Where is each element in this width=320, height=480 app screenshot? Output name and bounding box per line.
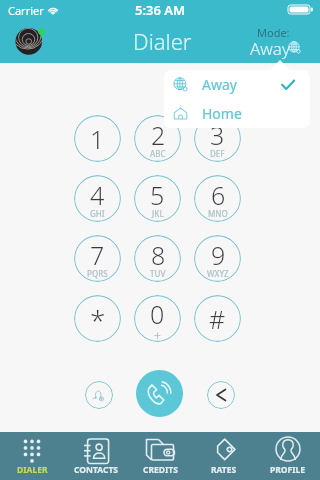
staticText: JKL bbox=[152, 208, 164, 219]
staticText: WXYZ bbox=[207, 268, 229, 279]
staticText: 0 bbox=[150, 297, 165, 331]
button[interactable]: 6 bbox=[194, 175, 241, 222]
staticText: PQRS bbox=[87, 268, 108, 279]
button[interactable]: 1 bbox=[74, 115, 121, 162]
button[interactable]: Away bbox=[164, 70, 310, 99]
button[interactable]: Home bbox=[164, 99, 310, 128]
button[interactable]: CREDITS bbox=[128, 432, 192, 480]
button[interactable]: 4 bbox=[74, 175, 121, 222]
staticText: 9 bbox=[211, 238, 226, 272]
button[interactable]: RATES bbox=[192, 432, 256, 480]
staticText: 8 bbox=[151, 238, 166, 272]
staticText: 6 bbox=[211, 178, 226, 212]
staticText: CREDITS bbox=[143, 464, 178, 476]
staticText: MNO bbox=[208, 208, 228, 219]
staticText: DIALER bbox=[17, 464, 48, 476]
staticText: 5:36 AM bbox=[135, 1, 186, 19]
button[interactable]: 0 bbox=[134, 295, 181, 342]
staticText: 2 bbox=[151, 118, 166, 152]
staticText: TUV bbox=[150, 268, 166, 279]
button[interactable]: CONTACTS bbox=[64, 432, 128, 480]
staticText: Away bbox=[250, 37, 290, 60]
button[interactable]: Mode: bbox=[248, 24, 312, 60]
staticText: Mode: bbox=[257, 25, 290, 40]
button[interactable]: 8 bbox=[134, 235, 181, 282]
button[interactable]: # bbox=[194, 295, 241, 342]
staticText: * bbox=[90, 301, 106, 339]
button[interactable]: * bbox=[74, 295, 121, 342]
staticText: 5 bbox=[150, 178, 165, 212]
staticText: GHI bbox=[90, 208, 105, 219]
staticText: Away bbox=[202, 75, 237, 94]
staticText: + bbox=[154, 327, 161, 340]
button[interactable]: PROFILE bbox=[256, 432, 320, 480]
staticText: # bbox=[209, 302, 226, 336]
button[interactable]: DIALER bbox=[0, 432, 64, 480]
staticText: RATES bbox=[211, 464, 237, 476]
staticText: Home bbox=[202, 104, 242, 123]
staticText: 1 bbox=[90, 122, 105, 156]
button[interactable]: 3 bbox=[194, 115, 241, 162]
button[interactable]: 2 bbox=[134, 115, 181, 162]
staticText: PROFILE bbox=[270, 464, 306, 476]
staticText: Carrier bbox=[8, 3, 44, 18]
staticText: 3 bbox=[210, 118, 225, 152]
button[interactable]: 7 bbox=[74, 235, 121, 282]
staticText: CONTACTS bbox=[74, 464, 118, 476]
staticText: 7 bbox=[90, 238, 105, 272]
button[interactable]: App logo bbox=[6, 22, 42, 58]
button[interactable]: 5 bbox=[134, 175, 181, 222]
button[interactable]: Add contact bbox=[85, 381, 113, 409]
button[interactable]: 9 bbox=[194, 235, 241, 282]
button[interactable]: Backspace bbox=[207, 381, 235, 409]
staticText: 4 bbox=[90, 178, 105, 212]
button[interactable]: Call bbox=[136, 370, 183, 417]
staticText: ABC bbox=[150, 148, 166, 159]
staticText: DEF bbox=[210, 148, 225, 159]
staticText: Dialer bbox=[133, 26, 192, 56]
